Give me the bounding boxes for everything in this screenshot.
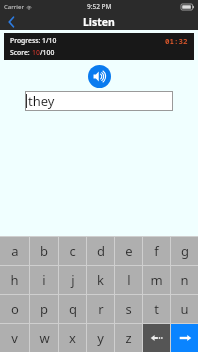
staticText: o — [11, 300, 19, 318]
staticText: c — [69, 242, 76, 260]
staticText: z — [125, 329, 132, 347]
button[interactable]: Play audio — [88, 65, 111, 88]
button[interactable]: r — [87, 295, 114, 323]
button[interactable]: h — [0, 266, 29, 294]
button[interactable]: q — [59, 295, 86, 323]
button[interactable]: l — [115, 266, 142, 294]
staticText: r — [98, 300, 104, 318]
staticText: w — [39, 329, 50, 347]
button[interactable]: u — [171, 295, 198, 323]
button[interactable]: x — [59, 324, 86, 352]
button[interactable]: e — [115, 237, 142, 265]
staticText: 01:32 — [165, 36, 188, 46]
staticText: p — [40, 300, 48, 318]
button[interactable]: i — [30, 266, 58, 294]
staticText: f — [154, 242, 159, 260]
staticText: Listen — [83, 15, 115, 29]
button[interactable]: c — [59, 237, 86, 265]
staticText: b — [40, 242, 48, 260]
button[interactable]: b — [30, 237, 58, 265]
button[interactable]: n — [171, 266, 198, 294]
staticText: i — [42, 271, 46, 289]
staticText: 10 — [32, 48, 40, 57]
staticText: n — [180, 271, 189, 289]
staticText: v — [11, 329, 18, 347]
staticText: Progress: 1/10 — [10, 36, 57, 45]
staticText: e — [125, 242, 133, 260]
staticText: j — [71, 271, 75, 289]
button[interactable]: j — [59, 266, 86, 294]
staticText: y — [97, 329, 104, 347]
staticText: d — [97, 242, 105, 260]
button[interactable]: they — [25, 91, 173, 111]
staticText: a — [11, 242, 19, 260]
staticText: l — [127, 271, 131, 289]
staticText: they — [28, 92, 55, 110]
button[interactable]: f — [143, 237, 170, 265]
staticText: Carrier — [4, 3, 24, 11]
button[interactable]: w — [30, 324, 58, 352]
staticText: /100 — [40, 48, 55, 57]
button[interactable]: z — [115, 324, 142, 352]
staticText: h — [10, 271, 19, 289]
staticText: t — [154, 300, 159, 318]
button[interactable]: Backspace — [143, 324, 170, 352]
staticText: g — [181, 242, 189, 260]
staticText: m — [150, 271, 163, 289]
staticText: s — [125, 300, 132, 318]
button[interactable]: g — [171, 237, 198, 265]
button[interactable]: d — [87, 237, 114, 265]
button[interactable]: v — [0, 324, 29, 352]
staticText: 9:52 PM — [87, 2, 112, 11]
button[interactable]: m — [143, 266, 170, 294]
staticText: u — [180, 300, 189, 318]
button[interactable]: y — [87, 324, 114, 352]
staticText: q — [69, 300, 77, 318]
staticText: x — [69, 329, 76, 347]
staticText: k — [97, 271, 104, 289]
button[interactable]: k — [87, 266, 114, 294]
button[interactable]: s — [115, 295, 142, 323]
staticText: Score: — [10, 48, 32, 57]
button[interactable]: t — [143, 295, 170, 323]
button[interactable]: p — [30, 295, 58, 323]
button[interactable]: a — [0, 237, 29, 265]
button[interactable]: o — [0, 295, 29, 323]
button[interactable]: Back — [0, 13, 22, 30]
button[interactable]: Enter — [171, 324, 198, 352]
